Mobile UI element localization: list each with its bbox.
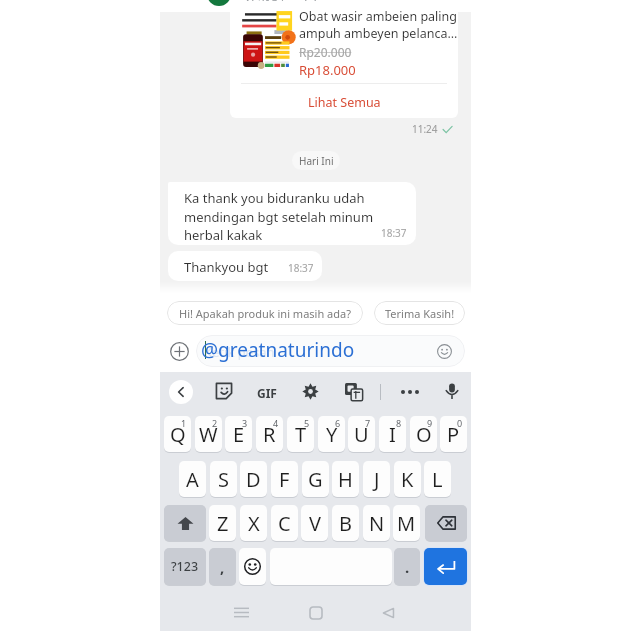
- button[interactable]: Shift: [164, 505, 206, 541]
- staticText: Hari Ini: [299, 154, 334, 168]
- staticText: Rp18.000: [299, 61, 356, 79]
- button[interactable]: P: [440, 416, 467, 452]
- button[interactable]: M: [393, 505, 420, 541]
- staticText: C: [278, 510, 291, 537]
- button[interactable]: K: [394, 461, 421, 497]
- button[interactable]: Add attachment: [165, 337, 193, 365]
- button[interactable]: N: [363, 505, 390, 541]
- staticText: E: [233, 421, 245, 448]
- staticText: 6: [335, 417, 341, 429]
- staticText: Z: [217, 510, 229, 537]
- button[interactable]: V: [301, 505, 328, 541]
- button[interactable]: Translate: [345, 383, 363, 401]
- button[interactable]: GIF: [257, 385, 277, 401]
- button[interactable]: Ketik pesan: [196, 335, 465, 367]
- staticText: Obat wasir ambeien paling ampuh ambeyen …: [299, 8, 458, 42]
- staticText: W: [199, 421, 218, 448]
- staticText: P: [447, 421, 460, 448]
- staticText: S: [218, 466, 229, 493]
- staticText: T: [295, 421, 307, 448]
- staticText: F: [279, 466, 290, 493]
- staticText: 11:24: [412, 122, 438, 136]
- staticText: Thankyou bgt: [184, 258, 269, 276]
- button[interactable]: Emoji: [239, 548, 266, 585]
- button[interactable]: Settings: [302, 383, 319, 400]
- button[interactable]: Comma: [209, 548, 236, 585]
- staticText: D: [246, 466, 261, 493]
- button[interactable]: Q: [164, 416, 191, 452]
- staticText: K: [401, 466, 414, 493]
- staticText: V: [309, 510, 321, 537]
- staticText: Aktif 3 jam lalu: [244, 0, 324, 8]
- staticText: A: [186, 466, 199, 493]
- button[interactable]: T: [287, 416, 314, 452]
- staticText: B: [339, 510, 352, 537]
- button[interactable]: Lihat Semua: [230, 87, 458, 117]
- staticText: U: [354, 421, 369, 448]
- button[interactable]: Y: [318, 416, 345, 452]
- button[interactable]: W: [195, 416, 222, 452]
- staticText: .: [405, 557, 410, 577]
- button[interactable]: L: [424, 461, 451, 497]
- button[interactable]: D: [240, 461, 267, 497]
- staticText: N: [369, 510, 385, 537]
- staticText: 0: [457, 417, 463, 429]
- staticText: L: [432, 466, 443, 493]
- button[interactable]: More options: [401, 390, 419, 394]
- button[interactable]: C: [271, 505, 298, 541]
- staticText: Terima Kasih!: [385, 306, 455, 321]
- button[interactable]: H: [332, 461, 359, 497]
- button[interactable]: X: [240, 505, 267, 541]
- button[interactable]: U: [348, 416, 375, 452]
- button[interactable]: Enter: [424, 548, 467, 585]
- staticText: 5: [304, 417, 310, 429]
- button[interactable]: Backspace: [425, 505, 467, 541]
- staticText: O: [416, 421, 432, 448]
- button[interactable]: Z: [209, 505, 236, 541]
- button[interactable]: Stickers: [215, 382, 233, 400]
- staticText: G: [308, 466, 323, 493]
- staticText: GIF: [257, 385, 277, 401]
- staticText: Ka thank you biduranku udah mendingan bg…: [184, 189, 374, 243]
- staticText: M: [397, 510, 416, 537]
- button[interactable]: O: [410, 416, 437, 452]
- staticText: ?123: [171, 558, 199, 575]
- staticText: Q: [170, 421, 186, 448]
- staticText: Ketik pesan: [204, 343, 275, 361]
- staticText: 4: [273, 417, 279, 429]
- staticText: Lihat Semua: [308, 94, 381, 111]
- staticText: 2: [212, 417, 218, 429]
- button[interactable]: J: [363, 461, 390, 497]
- button[interactable]: Hi! Apakah produk ini masih ada?: [167, 301, 363, 325]
- button[interactable]: G: [302, 461, 329, 497]
- button[interactable]: F: [271, 461, 298, 497]
- button[interactable]: B: [332, 505, 359, 541]
- button[interactable]: Voice input: [443, 382, 461, 400]
- button[interactable]: S: [210, 461, 237, 497]
- staticText: @greatnaturindo: [201, 337, 355, 363]
- button[interactable]: I: [379, 416, 406, 452]
- button[interactable]: Back: [382, 607, 396, 619]
- button[interactable]: Period: [394, 548, 420, 585]
- staticText: Rp20.000: [299, 44, 352, 60]
- staticText: J: [374, 466, 380, 493]
- button[interactable]: Back: [169, 380, 193, 404]
- staticText: 7: [365, 417, 371, 429]
- button[interactable]: Terima Kasih!: [374, 301, 465, 325]
- button[interactable]: Recent apps: [234, 607, 249, 618]
- button[interactable]: R: [256, 416, 283, 452]
- staticText: 8: [396, 417, 402, 429]
- staticText: I: [389, 421, 396, 448]
- staticText: X: [248, 510, 260, 537]
- button[interactable]: Obat wasir ambeien paling ampuh ambeyen …: [230, 1, 458, 118]
- button[interactable]: Symbols: [164, 548, 206, 585]
- button[interactable]: E: [225, 416, 252, 452]
- staticText: ,: [220, 557, 225, 577]
- button[interactable]: Home: [310, 607, 322, 619]
- button[interactable]: A: [179, 461, 206, 497]
- staticText: Hi! Apakah produk ini masih ada?: [179, 306, 351, 321]
- staticText: 9: [427, 417, 433, 429]
- staticText: 18:37: [288, 261, 314, 275]
- staticText: 18:37: [381, 226, 407, 240]
